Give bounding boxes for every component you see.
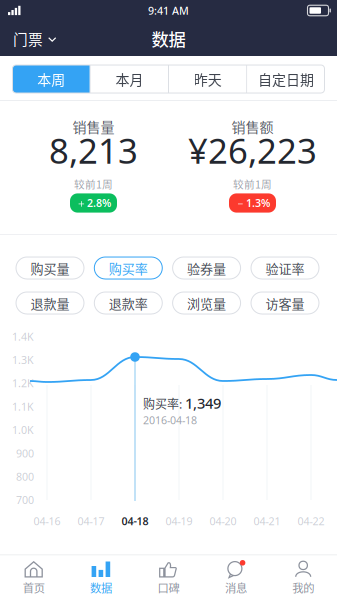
staticText: 本周 <box>37 69 65 89</box>
staticText: 购买量 <box>30 258 69 277</box>
staticText: 购买率 <box>109 258 148 277</box>
staticText: 口碑 <box>157 579 179 596</box>
staticText: 消息 <box>225 579 247 596</box>
button[interactable]: 昨天 <box>169 65 246 93</box>
staticText: 04-20 <box>209 514 236 528</box>
staticText: 700 <box>16 493 34 507</box>
button[interactable]: 购买率 <box>94 257 162 279</box>
staticText: －1.3% <box>235 196 270 210</box>
button[interactable]: 门票 <box>0 18 70 59</box>
staticText: 04-17 <box>77 514 104 528</box>
staticText: ＋2.8% <box>76 196 111 210</box>
staticText: 验券量 <box>187 258 226 277</box>
staticText: 较前1周 <box>233 176 272 192</box>
staticText: 800 <box>16 469 34 484</box>
button[interactable]: 验证率 <box>251 257 319 279</box>
staticText: 8,213 <box>49 127 138 173</box>
button[interactable]: 本周 <box>12 65 90 93</box>
staticText: 1.2K <box>12 376 34 390</box>
staticText: 自定日期 <box>258 69 314 89</box>
staticText: 1.0K <box>12 423 34 437</box>
staticText: 门票 <box>13 28 43 49</box>
staticText: 首页 <box>23 579 45 596</box>
staticText: 购买率: <box>143 395 182 412</box>
staticText: 1.4K <box>12 329 34 344</box>
staticText: 1,349 <box>185 393 221 413</box>
staticText: 验证率 <box>265 258 304 277</box>
button[interactable]: 验券量 <box>173 257 241 279</box>
button[interactable]: 我的 <box>270 554 337 600</box>
button[interactable]: 首页 <box>0 554 67 600</box>
button[interactable]: 自定日期 <box>247 65 324 93</box>
staticText: 我的 <box>292 579 314 596</box>
button[interactable]: 消息 <box>202 554 270 600</box>
staticText: 昨天 <box>194 69 222 89</box>
staticText: 较前1周 <box>74 176 113 192</box>
staticText: 04-19 <box>165 514 192 528</box>
staticText: 04-21 <box>253 514 280 528</box>
button[interactable]: 数据 <box>67 554 135 600</box>
button[interactable]: 浏览量 <box>173 292 241 314</box>
button[interactable]: 退款量 <box>16 292 84 314</box>
staticText: 04-18 <box>121 514 148 528</box>
staticText: 2016-04-18 <box>143 413 197 427</box>
button[interactable]: 口碑 <box>135 554 202 600</box>
staticText: ¥26,223 <box>188 127 317 173</box>
button[interactable]: 退款率 <box>94 292 162 314</box>
button[interactable]: 本月 <box>91 65 168 93</box>
staticText: 900 <box>16 446 34 460</box>
staticText: 访客量 <box>265 293 304 312</box>
staticText: 本月 <box>115 69 143 89</box>
staticText: 退款量 <box>30 293 69 312</box>
staticText: 9:41 AM <box>148 3 189 18</box>
staticText: 数据 <box>151 26 185 51</box>
staticText: 退款率 <box>109 293 148 312</box>
staticText: 数据 <box>90 579 112 596</box>
staticText: 1.1K <box>12 399 34 414</box>
staticText: 浏览量 <box>187 293 226 312</box>
button[interactable]: 访客量 <box>251 292 319 314</box>
staticText: 销售量 <box>72 116 114 137</box>
staticText: 销售额 <box>231 116 273 137</box>
staticText: 04-16 <box>33 514 60 528</box>
staticText: 04-22 <box>297 514 324 528</box>
button[interactable]: 购买量 <box>16 257 84 279</box>
staticText: 1.3K <box>12 353 34 367</box>
